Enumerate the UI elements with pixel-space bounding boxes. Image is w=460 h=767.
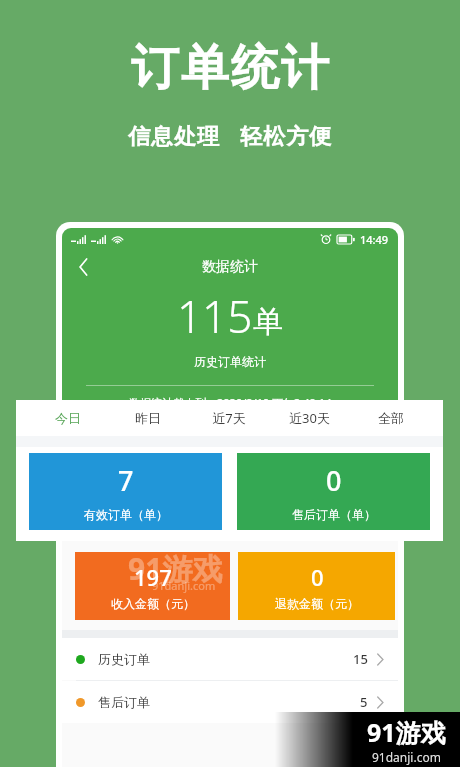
staticText: 数据统计 [202, 258, 258, 276]
staticText: 0 [326, 462, 342, 499]
staticText: 91danji.com [372, 749, 441, 765]
staticText: 0 [311, 562, 324, 592]
button[interactable]: 197 [75, 552, 230, 620]
staticText: 91游戏 [367, 715, 446, 749]
staticText: 信息处理 轻松方便 [128, 120, 333, 150]
button[interactable]: 近7天 [188, 400, 269, 436]
staticText: 91游戏 [128, 548, 223, 589]
staticText: 历史订单统计 [194, 354, 266, 369]
button[interactable]: 近30天 [269, 400, 350, 436]
staticText: 历史订单 [98, 651, 150, 667]
button[interactable]: 0 [238, 552, 395, 620]
staticText: 近30天 [289, 409, 330, 427]
staticText: 退款金额（元） [275, 596, 359, 611]
button[interactable]: 售后订单 [62, 681, 398, 723]
staticText: 收入金额（元） [111, 596, 195, 611]
staticText: 7 [118, 462, 134, 499]
staticText: 订单统计 [130, 38, 330, 98]
staticText: 数据统计截止到：2020/9/19 下午2:49:14 [129, 395, 332, 410]
staticText: 有效订单（单） [84, 507, 168, 522]
staticText: 售后订单（单） [292, 507, 376, 522]
staticText: 15 [353, 650, 368, 668]
button[interactable]: 昨日 [108, 400, 188, 436]
staticText: 今日 [55, 410, 81, 426]
staticText: 近7天 [212, 409, 246, 427]
button[interactable]: 全部 [350, 400, 431, 436]
button[interactable]: 历史订单 [62, 638, 398, 680]
staticText: 197 [134, 562, 172, 592]
button[interactable]: 0 [237, 453, 430, 530]
staticText: 售后订单 [98, 694, 150, 710]
staticText: 91danji.com [152, 578, 216, 593]
staticText: 14:49 [360, 232, 389, 247]
staticText: 昨日 [135, 410, 161, 426]
staticText: 5 [360, 693, 368, 711]
staticText: 全部 [378, 410, 404, 426]
staticText: 单 [253, 303, 283, 341]
button[interactable]: 7 [29, 453, 222, 530]
button[interactable]: Back [66, 250, 100, 284]
button[interactable]: 今日 [28, 400, 108, 436]
staticText: 115 [177, 286, 253, 346]
